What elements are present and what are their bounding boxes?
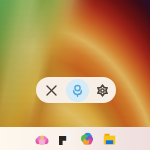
button[interactable]: Copilot xyxy=(76,130,98,148)
button[interactable]: Settings xyxy=(89,77,116,103)
button[interactable]: Microphone xyxy=(66,79,89,102)
button[interactable]: Task view xyxy=(54,131,76,147)
button[interactable]: File Explorer xyxy=(98,131,120,147)
button[interactable]: Close xyxy=(36,77,66,103)
button[interactable]: Widgets xyxy=(30,131,54,147)
